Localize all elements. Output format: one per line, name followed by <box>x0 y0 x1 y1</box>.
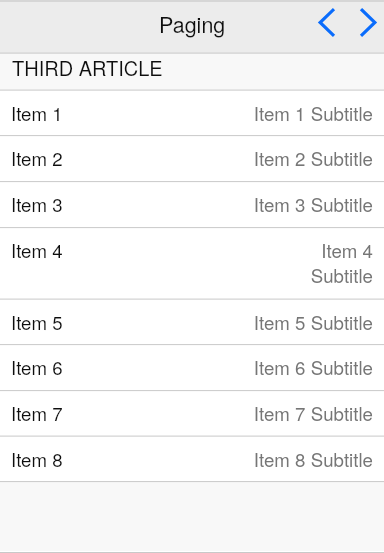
button[interactable]: Item 3 <box>0 182 384 227</box>
staticText: Item 4 <box>11 237 63 264</box>
staticText: Item 8 Subtitle <box>253 446 373 473</box>
staticText: Item 6 Subtitle <box>253 354 373 381</box>
button[interactable]: Item 1 <box>0 91 384 136</box>
staticText: Item 3 Subtitle <box>253 191 373 218</box>
staticText: Item 4 Subtitle <box>307 237 373 288</box>
button[interactable]: Item 7 <box>0 391 384 436</box>
staticText: Item 5 Subtitle <box>253 309 373 336</box>
button[interactable]: Next page <box>347 0 384 48</box>
staticText: Item 1 <box>11 100 63 127</box>
staticText: Item 1 Subtitle <box>253 100 373 127</box>
staticText: Paging <box>159 8 226 39</box>
staticText: Item 8 <box>11 446 63 473</box>
staticText: Item 3 <box>11 191 63 218</box>
button[interactable]: Item 5 <box>0 300 384 345</box>
button[interactable]: Item 6 <box>0 345 384 390</box>
staticText: Item 5 <box>11 309 63 336</box>
staticText: Item 6 <box>11 354 63 381</box>
staticText: THIRD ARTICLE <box>12 53 163 82</box>
staticText: Item 2 Subtitle <box>253 145 373 172</box>
staticText: Item 7 <box>11 400 63 427</box>
button[interactable]: Item 4 <box>0 228 384 299</box>
button[interactable]: Item 8 <box>0 437 384 482</box>
button[interactable]: Item 2 <box>0 136 384 181</box>
staticText: Item 7 Subtitle <box>253 400 373 427</box>
staticText: Item 2 <box>11 145 63 172</box>
button[interactable]: Previous page <box>305 0 347 48</box>
